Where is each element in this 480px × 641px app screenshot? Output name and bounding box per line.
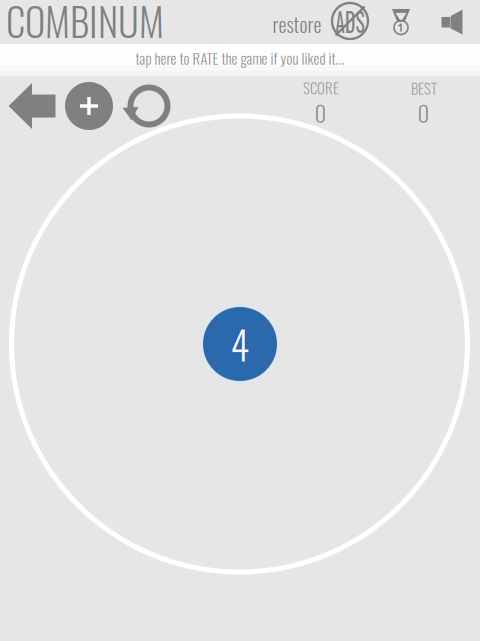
button[interactable]: Remove ads [330,1,370,41]
staticText: COMBINUM [6,0,164,49]
button[interactable]: restore [267,8,327,40]
button[interactable]: Sound [434,4,470,40]
staticText: restore [272,9,321,39]
button[interactable]: Undo [4,80,60,132]
staticText: SCORE [303,77,339,98]
staticText: 4 [230,315,249,373]
staticText: 0 [417,96,429,129]
button[interactable]: Restart [122,79,176,133]
staticText: 0 [314,96,326,129]
staticText: tap here to RATE the game if you liked i… [135,47,344,69]
button[interactable]: tap here to RATE the game if you liked i… [0,44,480,76]
staticText: ADS [329,0,371,42]
button[interactable]: Add piece [62,79,116,133]
button[interactable]: Leaderboard [384,3,418,37]
staticText: BEST [411,77,437,99]
